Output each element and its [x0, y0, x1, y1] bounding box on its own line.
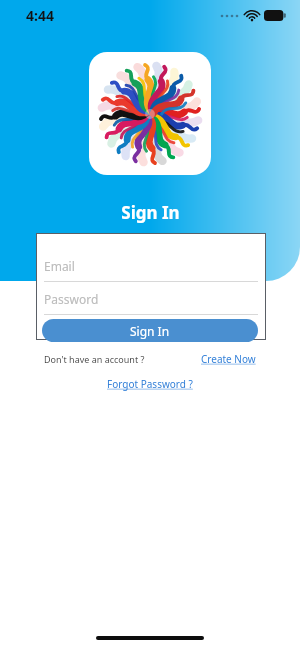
staticText: Email — [44, 258, 75, 274]
staticText: Create Now — [201, 352, 256, 366]
button[interactable]: Sign In — [42, 319, 258, 342]
staticText: Sign In — [130, 323, 170, 339]
staticText: Forgot Password ? — [107, 377, 193, 391]
button[interactable]: Create Now — [201, 352, 256, 366]
staticText: Sign In — [121, 201, 180, 224]
button[interactable]: Password — [44, 291, 258, 315]
button[interactable]: Forgot Password ? — [107, 377, 193, 391]
staticText: Password — [44, 291, 99, 307]
staticText: 4:44 — [26, 6, 54, 25]
staticText: Don't have an account ? — [44, 353, 145, 365]
button[interactable]: Email — [44, 258, 258, 282]
